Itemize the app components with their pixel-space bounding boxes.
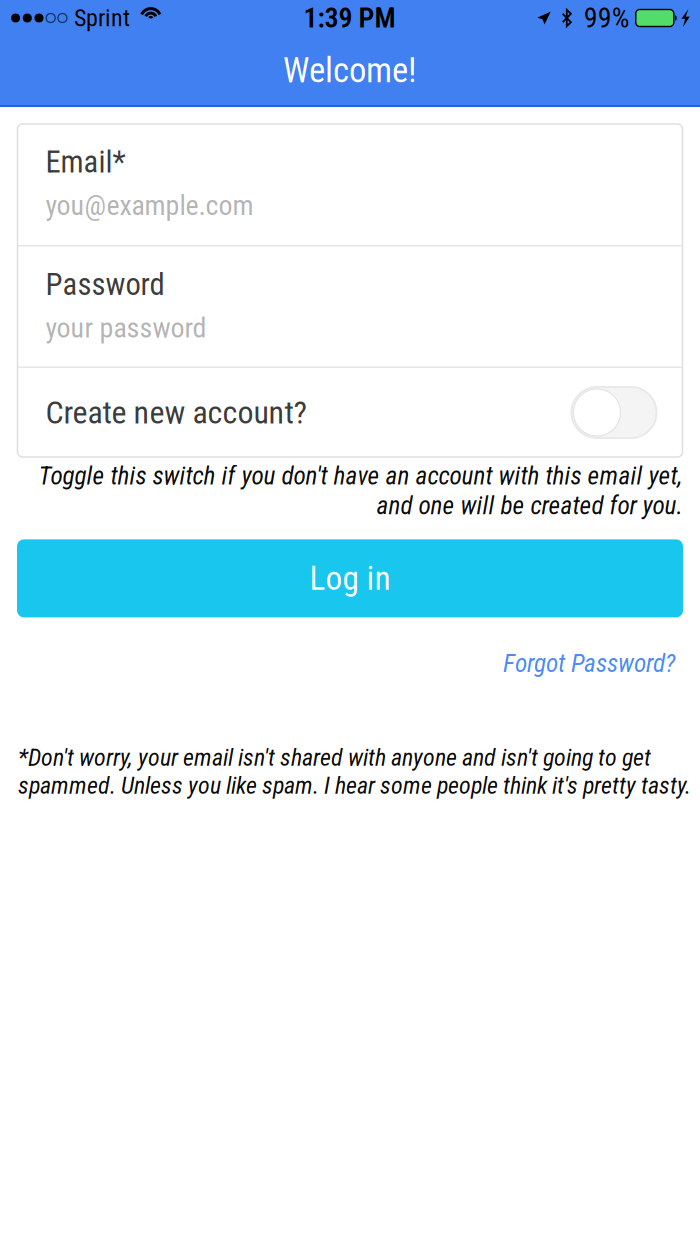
staticText: Create new account? bbox=[45, 394, 307, 431]
staticText: Log in bbox=[309, 559, 390, 598]
button[interactable]: Email* bbox=[17, 124, 682, 245]
staticText: Email* bbox=[45, 144, 125, 180]
staticText: *Don't worry, your email isn't shared wi… bbox=[18, 743, 691, 800]
staticText: Welcome! bbox=[283, 50, 417, 91]
button[interactable]: Forgot Password? bbox=[25, 643, 675, 683]
button[interactable]: Password bbox=[17, 246, 682, 366]
staticText: Toggle this switch if you don't have an … bbox=[38, 461, 682, 520]
staticText: 99% bbox=[584, 2, 630, 34]
staticText: Sprint bbox=[74, 4, 130, 32]
staticText: Password bbox=[45, 266, 164, 302]
staticText: 1:39 PM bbox=[303, 2, 395, 34]
button[interactable]: Log in bbox=[17, 539, 683, 617]
button[interactable]: Create new account? bbox=[17, 368, 682, 457]
staticText: you@example.com bbox=[45, 189, 253, 222]
staticText: Forgot Password? bbox=[503, 648, 675, 678]
staticText: your password bbox=[45, 311, 206, 344]
